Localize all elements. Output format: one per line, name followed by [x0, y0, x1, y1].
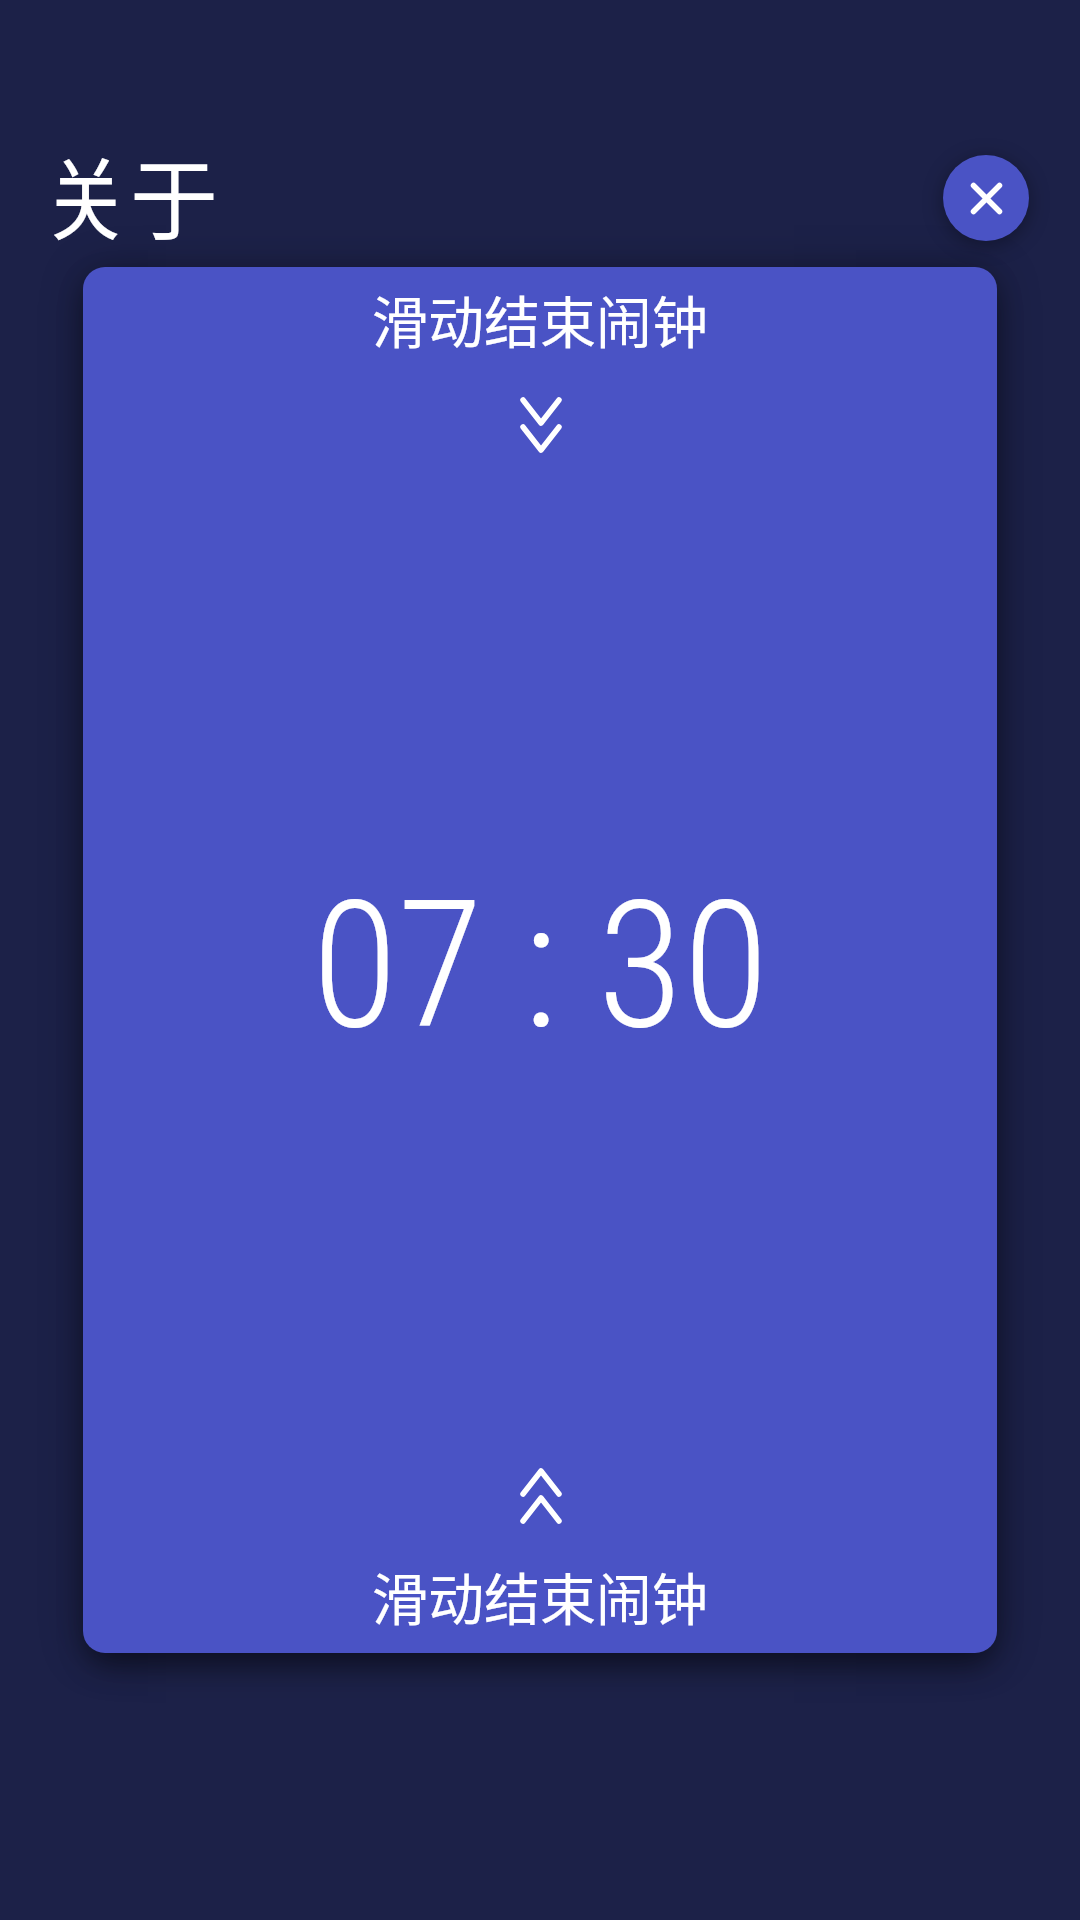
staticText: 关于	[42, 130, 219, 255]
button[interactable]	[943, 155, 1029, 241]
staticText: 滑动结束闹钟	[372, 1555, 708, 1635]
button[interactable]: 滑动结束闹钟	[83, 267, 997, 1653]
staticText: 07 : 30	[312, 863, 769, 1069]
staticText: 滑动结束闹钟	[372, 278, 708, 358]
